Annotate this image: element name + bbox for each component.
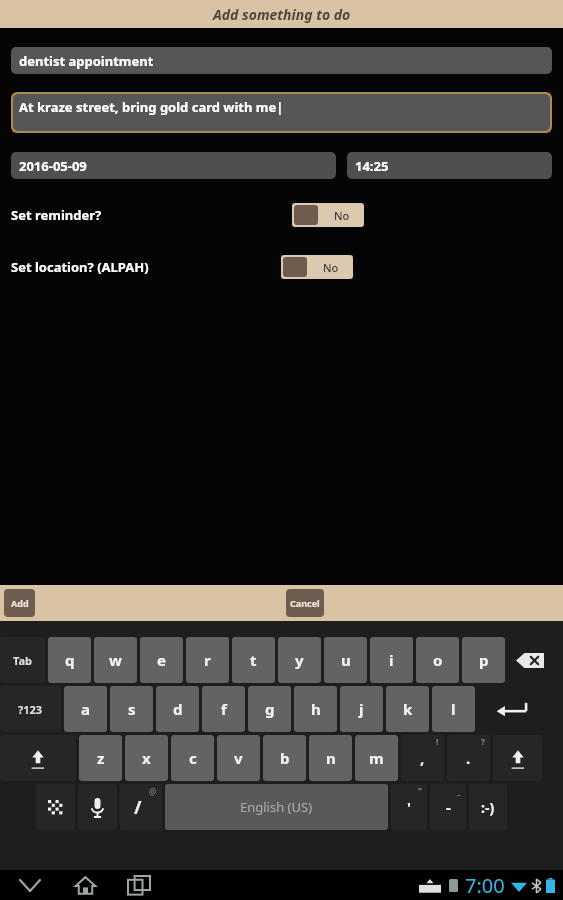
staticText: e bbox=[157, 650, 166, 670]
staticText: i bbox=[389, 650, 394, 670]
button[interactable]: Backspace bbox=[508, 637, 551, 683]
staticText: y bbox=[295, 650, 304, 670]
staticText: w bbox=[109, 650, 122, 670]
staticText: Tab bbox=[13, 653, 33, 668]
button[interactable]: Voice input bbox=[78, 784, 117, 830]
button[interactable]: English (US) bbox=[165, 784, 388, 830]
staticText: l bbox=[451, 699, 456, 719]
button[interactable]: Recent apps bbox=[119, 870, 159, 900]
button[interactable]: Shift bbox=[493, 735, 542, 781]
button[interactable]: y bbox=[278, 637, 321, 683]
staticText: ? bbox=[481, 736, 485, 747]
button[interactable]: z bbox=[79, 735, 122, 781]
button[interactable]: l bbox=[432, 686, 475, 732]
staticText: :-) bbox=[481, 798, 495, 817]
button[interactable]: x bbox=[125, 735, 168, 781]
staticText: f bbox=[221, 699, 227, 719]
button[interactable]: @ bbox=[120, 784, 162, 830]
button[interactable]: ?123 bbox=[0, 686, 61, 732]
staticText: ' bbox=[407, 797, 411, 817]
staticText: 14:25 bbox=[355, 157, 389, 175]
staticText: r bbox=[204, 650, 211, 670]
button[interactable]: v bbox=[217, 735, 260, 781]
staticText: x bbox=[142, 748, 151, 768]
staticText: c bbox=[189, 748, 197, 768]
staticText: , bbox=[420, 748, 425, 768]
button[interactable]: m bbox=[355, 735, 398, 781]
button[interactable]: Enter bbox=[478, 686, 545, 732]
button[interactable]: j bbox=[340, 686, 383, 732]
staticText: 7:00 bbox=[465, 872, 505, 899]
staticText: ! bbox=[436, 736, 439, 747]
staticText: a bbox=[81, 699, 90, 719]
staticText: p bbox=[479, 650, 489, 670]
button[interactable]: b bbox=[263, 735, 306, 781]
button[interactable]: ! bbox=[401, 735, 444, 781]
button[interactable]: r bbox=[186, 637, 229, 683]
button[interactable]: e bbox=[140, 637, 183, 683]
button[interactable]: 2016-05-09 bbox=[11, 152, 336, 179]
button[interactable]: p bbox=[462, 637, 505, 683]
button[interactable]: o bbox=[416, 637, 459, 683]
button[interactable]: h bbox=[294, 686, 337, 732]
button[interactable]: g bbox=[248, 686, 291, 732]
button[interactable]: Tab bbox=[0, 637, 45, 683]
staticText: Set reminder? bbox=[11, 206, 102, 224]
staticText: - bbox=[446, 797, 451, 817]
staticText: / bbox=[134, 795, 142, 820]
button[interactable]: t bbox=[232, 637, 275, 683]
staticText: u bbox=[341, 650, 351, 670]
staticText: . bbox=[466, 748, 471, 768]
staticText: Add bbox=[11, 597, 29, 609]
staticText: t bbox=[250, 650, 257, 670]
staticText: ?123 bbox=[18, 702, 43, 717]
staticText: k bbox=[403, 699, 413, 719]
staticText: English (US) bbox=[240, 798, 313, 816]
staticText: v bbox=[234, 748, 243, 768]
staticText: Set location? (ALPAH) bbox=[11, 258, 149, 276]
staticText: Add something to do bbox=[213, 5, 351, 24]
button[interactable]: w bbox=[94, 637, 137, 683]
button[interactable]: Home bbox=[65, 870, 105, 900]
staticText: b bbox=[280, 748, 290, 768]
button[interactable]: dentist appointment bbox=[11, 47, 552, 74]
button[interactable]: Shift bbox=[0, 735, 76, 781]
button[interactable]: k bbox=[386, 686, 429, 732]
button[interactable]: u bbox=[324, 637, 367, 683]
button[interactable]: 14:25 bbox=[347, 152, 552, 179]
staticText: _ bbox=[457, 785, 461, 796]
staticText: No bbox=[334, 208, 350, 223]
button[interactable]: Hide keyboard bbox=[10, 870, 50, 900]
staticText: d bbox=[173, 699, 183, 719]
button[interactable]: Cancel bbox=[286, 589, 324, 617]
staticText: 2016-05-09 bbox=[19, 157, 87, 175]
button[interactable]: i bbox=[370, 637, 413, 683]
button[interactable]: At kraze street, bring gold card with me… bbox=[13, 94, 550, 131]
button[interactable]: No bbox=[281, 255, 353, 279]
button[interactable]: n bbox=[309, 735, 352, 781]
staticText: q bbox=[65, 650, 75, 670]
button[interactable]: a bbox=[64, 686, 107, 732]
button[interactable]: q bbox=[48, 637, 91, 683]
button[interactable]: Add bbox=[4, 589, 35, 617]
button[interactable]: _ bbox=[430, 784, 466, 830]
button[interactable]: No bbox=[292, 203, 364, 227]
staticText: g bbox=[265, 699, 275, 719]
button[interactable]: ? bbox=[447, 735, 490, 781]
staticText: j bbox=[359, 699, 364, 719]
button[interactable]: d bbox=[156, 686, 199, 732]
staticText: Cancel bbox=[290, 597, 320, 609]
staticText: z bbox=[97, 748, 105, 768]
staticText: h bbox=[311, 699, 321, 719]
staticText: dentist appointment bbox=[19, 52, 154, 70]
button[interactable]: " bbox=[391, 784, 427, 830]
staticText: m bbox=[369, 748, 384, 768]
button[interactable]: f bbox=[202, 686, 245, 732]
button[interactable]: c bbox=[171, 735, 214, 781]
button[interactable]: s bbox=[110, 686, 153, 732]
staticText: @ bbox=[149, 786, 157, 797]
staticText: s bbox=[128, 699, 136, 719]
button[interactable]: Keyboard settings bbox=[36, 784, 75, 830]
button[interactable]: Emoji bbox=[469, 784, 507, 830]
staticText: At kraze street, bring gold card with me… bbox=[19, 98, 284, 116]
